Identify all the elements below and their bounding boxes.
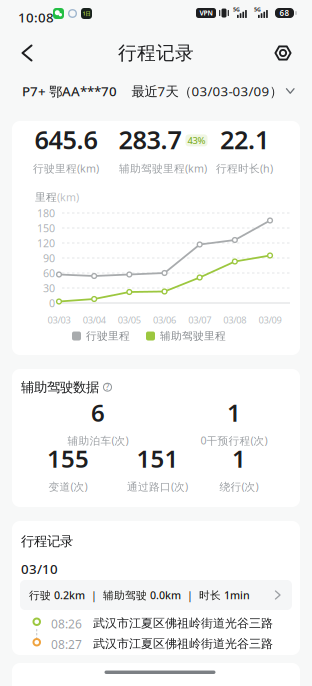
- button[interactable]: 设置: [266, 36, 300, 70]
- staticText: 03/06: [153, 314, 176, 326]
- staticText: 30: [43, 281, 55, 295]
- staticText: 1日: [82, 10, 90, 17]
- staticText: 283.7: [118, 123, 181, 156]
- staticText: 辅助泊车(次): [67, 433, 128, 448]
- staticText: 行程记录: [21, 533, 73, 549]
- staticText: 150: [37, 221, 55, 235]
- staticText: 武汉市江夏区佛祖岭街道光谷三路: [93, 616, 273, 631]
- staticText: 1: [227, 396, 241, 428]
- staticText: 03/10: [21, 560, 58, 578]
- button[interactable]: 最近7天（03/03-03/09）: [131, 81, 294, 101]
- staticText: (km): [57, 190, 79, 204]
- staticText: 行程时长(h): [216, 161, 273, 175]
- staticText: 6: [91, 396, 105, 428]
- staticText: 5G: [254, 6, 261, 13]
- button[interactable]: P7+ 鄂AA***70: [22, 81, 117, 101]
- staticText: P7+ 鄂AA***70: [22, 82, 117, 100]
- staticText: ?: [105, 382, 109, 392]
- staticText: 03/05: [118, 314, 141, 326]
- button[interactable]: 返回: [12, 36, 42, 70]
- staticText: 里程: [35, 190, 57, 204]
- staticText: 0干预行程(次): [200, 433, 267, 448]
- staticText: 90: [43, 251, 55, 265]
- staticText: 03/08: [223, 314, 246, 326]
- staticText: 行程记录: [118, 41, 194, 64]
- staticText: 03/03: [47, 314, 70, 326]
- staticText: 通过路口(次): [127, 479, 188, 494]
- staticText: 最近7天（03/03-03/09）: [131, 82, 282, 100]
- staticText: 03/09: [258, 314, 281, 326]
- staticText: 绕行(次): [219, 479, 258, 494]
- staticText: 行驶里程(km): [33, 161, 99, 175]
- staticText: 变道(次): [48, 479, 87, 494]
- button[interactable]: 行程详情: [20, 580, 292, 610]
- staticText: 180: [37, 206, 55, 220]
- staticText: 120: [37, 236, 55, 250]
- staticText: 08:26: [51, 616, 82, 632]
- staticText: 辅助驾驶里程(km): [119, 161, 207, 175]
- staticText: 10:08: [18, 8, 54, 26]
- staticText: 0: [49, 296, 55, 310]
- staticText: 武汉市江夏区佛祖岭街道光谷三路: [93, 636, 273, 651]
- staticText: 03/04: [83, 314, 106, 326]
- staticText: 22.1: [220, 123, 269, 156]
- staticText: 行驶 0.2km | 辅助驾驶 0.0km | 时长 1min: [29, 588, 250, 602]
- staticText: 辅助驾驶数据: [21, 379, 99, 395]
- staticText: 08:27: [51, 636, 82, 652]
- staticText: 行驶里程: [86, 329, 130, 342]
- staticText: 1: [232, 442, 246, 474]
- staticText: 43%: [187, 134, 205, 147]
- staticText: 151: [136, 442, 178, 474]
- staticText: 03/07: [188, 314, 211, 326]
- staticText: 68: [279, 8, 289, 18]
- staticText: 5G: [233, 6, 240, 13]
- staticText: 645.6: [34, 123, 97, 156]
- staticText: 155: [47, 442, 89, 474]
- staticText: 辅助驾驶里程: [160, 329, 226, 342]
- staticText: VPN: [199, 9, 212, 17]
- staticText: 60: [43, 266, 55, 280]
- button[interactable]: 说明: [103, 383, 112, 392]
